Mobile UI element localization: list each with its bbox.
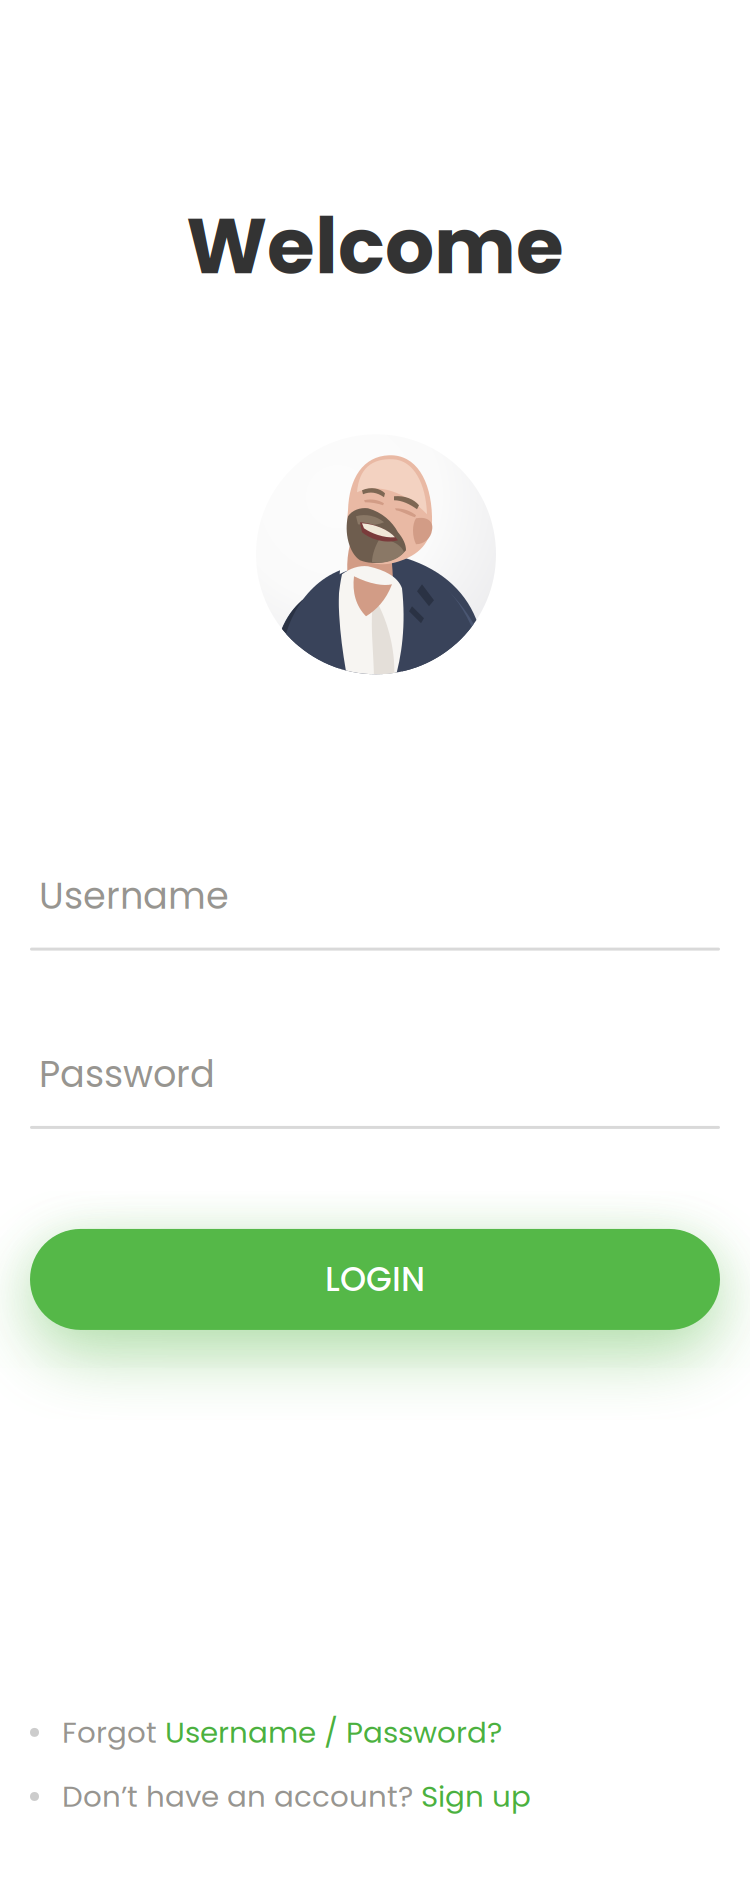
- staticText: Password: [39, 1049, 215, 1100]
- button[interactable]: LOGIN: [30, 1229, 720, 1330]
- staticText: LOGIN: [325, 1256, 425, 1303]
- staticText: Don’t have an account?: [62, 1776, 421, 1817]
- staticText: Username / Password?: [165, 1712, 502, 1753]
- staticText: Username: [39, 870, 229, 922]
- button[interactable]: Don’t have an account?: [0, 1776, 750, 1817]
- staticText: Forgot: [62, 1712, 165, 1753]
- staticText: Welcome: [186, 192, 564, 300]
- button[interactable]: Forgot: [0, 1712, 750, 1753]
- staticText: Sign up: [421, 1776, 531, 1817]
